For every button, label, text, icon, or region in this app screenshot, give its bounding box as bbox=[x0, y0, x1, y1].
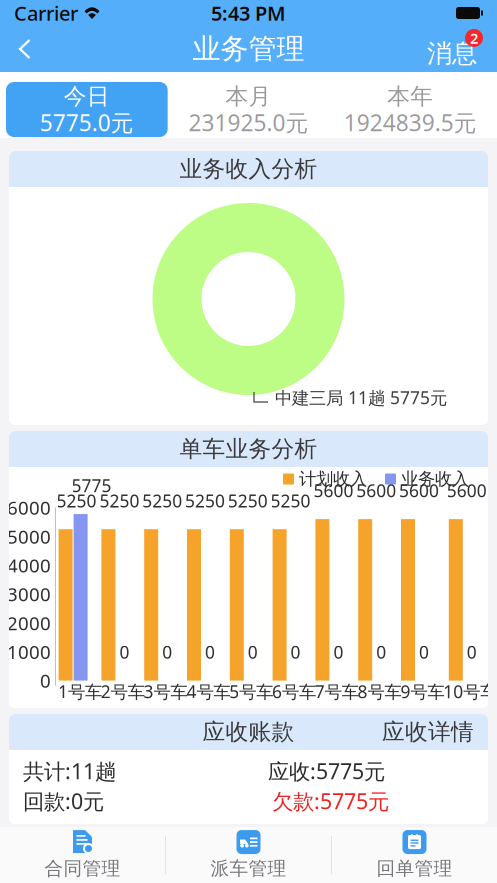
staticText: 9号车 bbox=[400, 680, 444, 703]
staticText: 2号车 bbox=[101, 680, 145, 703]
staticText: 应收账款 bbox=[202, 718, 294, 746]
staticText: 1924839.5元 bbox=[344, 107, 477, 137]
staticText: 业务管理 bbox=[192, 32, 304, 66]
staticText: 0 bbox=[119, 641, 129, 664]
staticText: 0 bbox=[376, 641, 386, 664]
staticText: 今日 bbox=[64, 83, 110, 110]
staticText: 本月 bbox=[225, 83, 271, 110]
staticText: 7号车 bbox=[315, 680, 359, 703]
staticText: 应收详情 bbox=[382, 718, 474, 746]
staticText: 5600 bbox=[356, 479, 396, 502]
staticText: 0 bbox=[248, 641, 258, 664]
staticText: 6000 bbox=[7, 495, 51, 520]
button[interactable]: 本年 bbox=[329, 72, 491, 138]
staticText: 合同管理 bbox=[44, 857, 120, 880]
button[interactable]: 本月 bbox=[168, 72, 329, 138]
staticText: 单车业务分析 bbox=[179, 435, 317, 463]
staticText: 0 bbox=[162, 641, 172, 664]
staticText: 4000 bbox=[7, 553, 51, 578]
staticText: 本年 bbox=[387, 83, 433, 110]
staticText: 1000 bbox=[7, 639, 51, 664]
staticText: 共计:11趟 bbox=[23, 757, 116, 785]
button[interactable]: 今日 bbox=[6, 72, 168, 138]
staticText: 3号车 bbox=[144, 680, 188, 703]
staticText: 消息 bbox=[427, 38, 477, 69]
staticText: 0 bbox=[291, 641, 301, 664]
staticText: 10号车 bbox=[443, 680, 497, 703]
button[interactable]: Back bbox=[0, 26, 50, 72]
staticText: 0 bbox=[40, 668, 51, 693]
staticText: 0 bbox=[419, 641, 429, 664]
staticText: 5250 bbox=[99, 489, 139, 512]
staticText: 5600 bbox=[447, 479, 487, 502]
staticText: 回单管理 bbox=[376, 857, 452, 880]
staticText: 3000 bbox=[7, 582, 51, 606]
staticText: 5600 bbox=[399, 479, 439, 502]
staticText: 业务收入分析 bbox=[179, 155, 317, 183]
staticText: 业务收入 bbox=[401, 468, 469, 490]
staticText: 派车管理 bbox=[210, 857, 286, 880]
staticText: 5250 bbox=[228, 489, 268, 512]
staticText: 1号车 bbox=[58, 680, 102, 703]
staticText: 2 bbox=[470, 28, 478, 48]
staticText: 5000 bbox=[7, 524, 51, 549]
staticText: 0 bbox=[467, 641, 477, 664]
staticText: 6号车 bbox=[272, 680, 316, 703]
staticText: 5775 bbox=[72, 474, 112, 497]
staticText: 5250 bbox=[185, 489, 225, 512]
staticText: 5号车 bbox=[229, 680, 273, 703]
staticText: 5250 bbox=[57, 489, 97, 512]
staticText: 5:43 PM bbox=[211, 0, 286, 26]
staticText: 2000 bbox=[7, 610, 51, 635]
button[interactable]: 派车管理 bbox=[166, 829, 331, 881]
staticText: 5250 bbox=[142, 489, 182, 512]
staticText: 5250 bbox=[271, 489, 311, 512]
staticText: 欠款:5775元 bbox=[272, 787, 389, 815]
staticText: 应收:5775元 bbox=[268, 757, 385, 785]
staticText: 计划收入 bbox=[299, 468, 367, 490]
staticText: 中建三局 11趟 5775元 bbox=[275, 386, 447, 409]
button[interactable]: 消息 bbox=[413, 26, 497, 72]
staticText: 4号车 bbox=[186, 680, 230, 703]
staticText: 231925.0元 bbox=[188, 107, 308, 137]
staticText: 8号车 bbox=[358, 680, 402, 703]
button[interactable]: 应收详情 bbox=[368, 712, 488, 752]
staticText: Carrier bbox=[14, 0, 78, 26]
button[interactable]: 合同管理 bbox=[0, 829, 165, 881]
staticText: 5775.0元 bbox=[40, 107, 134, 137]
button[interactable]: 回单管理 bbox=[332, 829, 497, 881]
staticText: 0 bbox=[205, 641, 215, 664]
staticText: 0 bbox=[333, 641, 343, 664]
staticText: 回款:0元 bbox=[23, 787, 104, 815]
staticText: 5600 bbox=[313, 479, 353, 502]
